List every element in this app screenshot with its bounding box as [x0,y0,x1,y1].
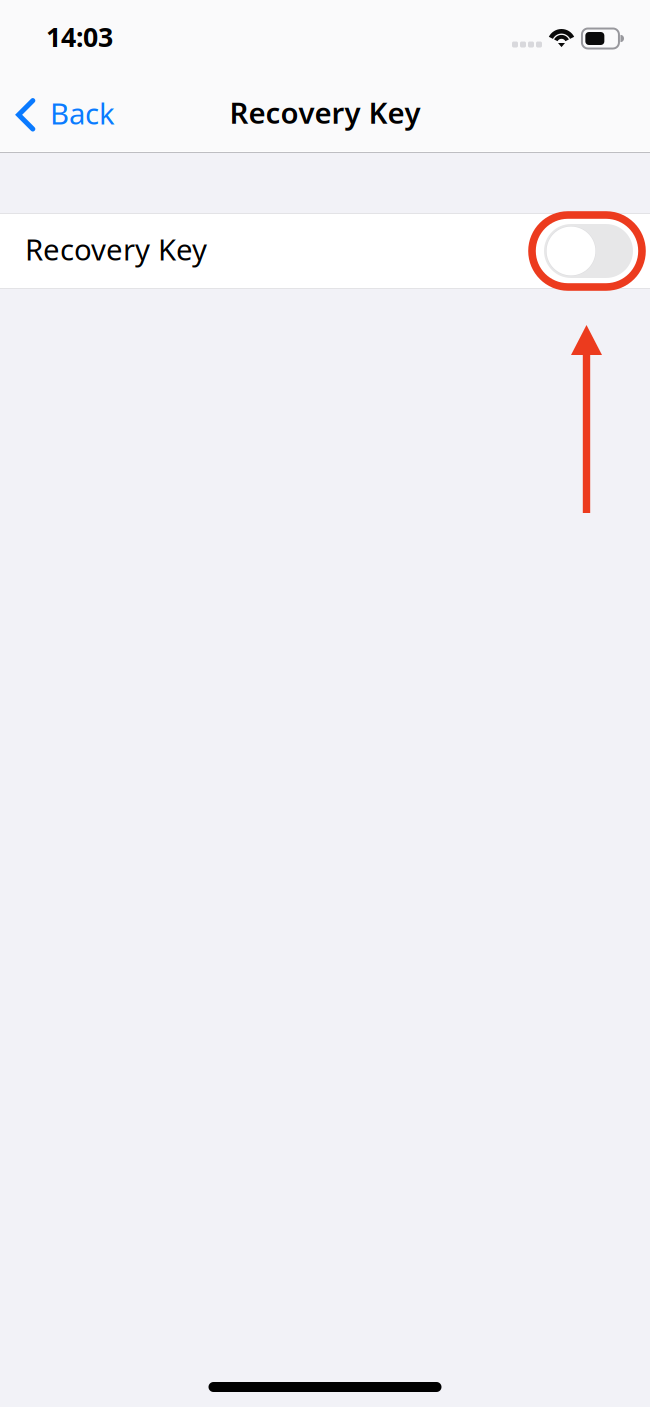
button[interactable]: Recovery Key [0,214,650,288]
staticText: Recovery Key [25,229,207,268]
staticText: Recovery Key [229,93,420,132]
staticText: 14:03 [46,19,113,54]
staticText: Back [50,93,115,132]
button[interactable]: Back [0,87,129,139]
